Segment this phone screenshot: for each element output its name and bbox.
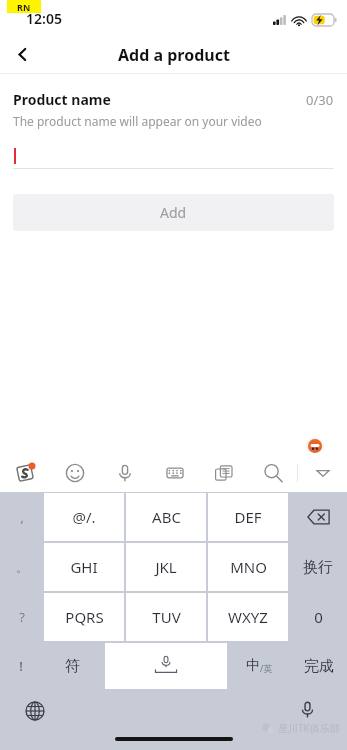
staticText: 12:05: [26, 9, 62, 28]
staticText: 0: [314, 607, 323, 627]
staticText: 符: [65, 657, 80, 676]
button[interactable]: Back: [0, 36, 44, 73]
button[interactable]: @/.: [44, 493, 124, 541]
staticText: @/.: [72, 507, 96, 527]
staticText: /英: [260, 662, 273, 674]
button[interactable]: Space: [105, 643, 227, 689]
button[interactable]: WXYZ: [208, 593, 288, 641]
button[interactable]: Voice input: [100, 453, 150, 492]
button[interactable]: JKL: [126, 543, 206, 591]
button[interactable]: PQRS: [44, 593, 124, 641]
staticText: ?: [19, 608, 25, 626]
staticText: WXYZ: [228, 607, 268, 627]
staticText: Add a product: [118, 44, 230, 66]
button[interactable]: Clipboard: [199, 453, 248, 492]
button[interactable]: Search: [248, 453, 297, 492]
button[interactable]: MNO: [208, 543, 288, 591]
staticText: ABC: [152, 507, 181, 527]
button[interactable]: Hide keyboard: [298, 453, 347, 492]
button[interactable]: 完成: [292, 643, 346, 689]
button[interactable]: ?: [1, 593, 42, 641]
staticText: GHI: [70, 557, 98, 577]
button[interactable]: Keyboard layout: [150, 453, 199, 492]
button[interactable]: Sogou input: [0, 453, 50, 492]
staticText: RN: [17, 1, 31, 13]
button[interactable]: ABC: [126, 493, 206, 541]
button[interactable]: 0: [290, 593, 346, 641]
staticText: JKL: [155, 557, 177, 577]
staticText: 完成: [304, 657, 334, 676]
button[interactable]: GHI: [44, 543, 124, 591]
button[interactable]: Sticker: [306, 438, 324, 453]
staticText: 星川TK俱乐部: [278, 721, 340, 735]
button[interactable]: Change language: [21, 697, 49, 725]
staticText: PQRS: [65, 607, 104, 627]
button[interactable]: !: [1, 643, 40, 689]
staticText: 中: [246, 657, 260, 675]
button[interactable]: 换行: [290, 543, 346, 591]
button[interactable]: 符: [42, 643, 103, 689]
button[interactable]: TUV: [126, 593, 206, 641]
button[interactable]: Voice input: [293, 695, 321, 723]
staticText: Add: [160, 203, 187, 222]
staticText: 。: [16, 560, 28, 575]
button[interactable]: Emoji: [50, 453, 100, 492]
staticText: DEF: [234, 507, 262, 527]
button[interactable]: [13, 144, 334, 168]
staticText: MNO: [230, 557, 267, 577]
staticText: The product name will appear on your vid…: [13, 113, 262, 129]
button[interactable]: 中: [229, 643, 290, 689]
button[interactable]: DEF: [208, 493, 288, 541]
staticText: Product name: [13, 90, 111, 109]
button[interactable]: Add: [13, 194, 334, 231]
staticText: 换行: [303, 558, 333, 577]
staticText: ,: [20, 509, 24, 525]
staticText: !: [19, 657, 23, 675]
button[interactable]: Delete: [290, 493, 346, 541]
staticText: 0/30: [306, 91, 334, 109]
staticText: TUV: [152, 607, 181, 627]
